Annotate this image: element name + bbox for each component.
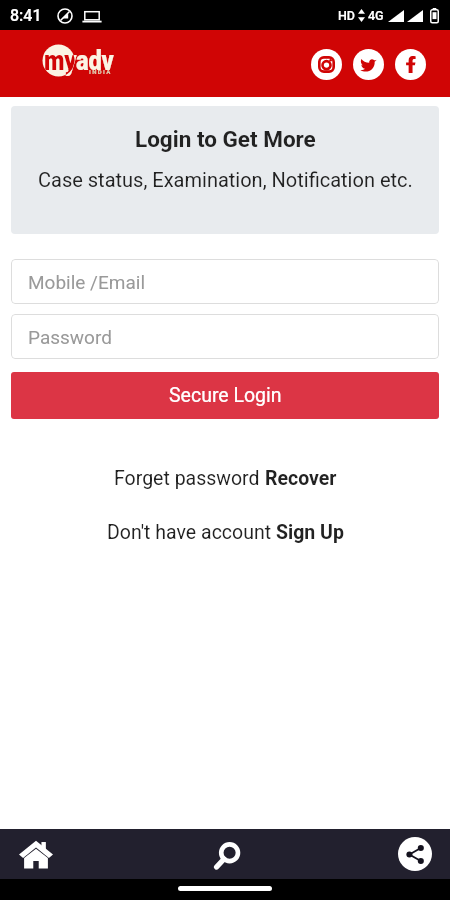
staticText: Password bbox=[28, 326, 112, 348]
staticText: Don't have account bbox=[107, 521, 276, 544]
staticText: Sign Up bbox=[276, 521, 344, 544]
button[interactable]: Home bbox=[10, 829, 62, 879]
button[interactable]: Facebook bbox=[395, 49, 426, 80]
staticText: 8:41 bbox=[10, 6, 42, 25]
staticText: Mobile /Email bbox=[28, 271, 145, 293]
button[interactable]: Secure Login bbox=[11, 372, 439, 419]
button[interactable]: Instagram bbox=[311, 49, 342, 80]
staticText: Case status, Examination, Notification e… bbox=[38, 168, 413, 191]
staticText: Recover bbox=[265, 467, 337, 490]
staticText: Secure Login bbox=[169, 384, 282, 407]
staticText: Login to Get More bbox=[135, 126, 316, 152]
button[interactable]: Don't have account bbox=[99, 517, 352, 548]
staticText: INDIA bbox=[89, 68, 112, 75]
button[interactable]: Share bbox=[389, 829, 441, 879]
staticText: Forget password bbox=[114, 467, 265, 490]
button[interactable]: Mobile /Email bbox=[11, 259, 439, 304]
button[interactable]: Search bbox=[199, 829, 251, 879]
staticText: 4G bbox=[368, 8, 384, 23]
staticText: HD bbox=[338, 8, 356, 23]
staticText: myadv bbox=[44, 45, 114, 77]
button[interactable]: Twitter bbox=[353, 49, 384, 80]
staticText: myadv bbox=[44, 45, 114, 77]
button[interactable]: Password bbox=[11, 314, 439, 359]
button[interactable]: Forget password bbox=[106, 463, 345, 494]
